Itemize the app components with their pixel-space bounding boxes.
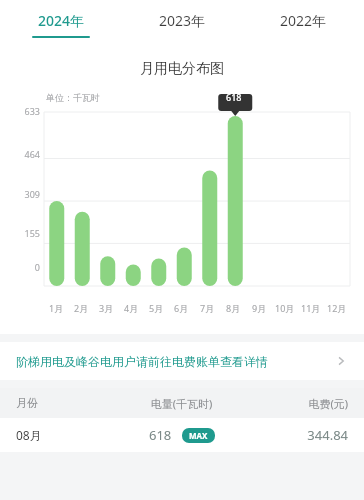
- staticText: 633: [0, 105, 40, 117]
- staticText: 4月: [124, 302, 139, 314]
- staticText: 11月: [301, 302, 321, 314]
- staticText: 单位：千瓦时: [46, 92, 100, 103]
- staticText: 电量(千瓦时): [119, 396, 244, 411]
- staticText: 2023年: [159, 11, 206, 30]
- staticText: 5月: [149, 302, 164, 314]
- button[interactable]: 阶梯用电及峰谷电用户请前往电费账单查看详情: [0, 342, 364, 380]
- staticText: 618: [226, 91, 242, 103]
- staticText: 2月: [74, 302, 89, 314]
- staticText: 10月: [275, 302, 295, 314]
- staticText: 309: [0, 188, 40, 200]
- staticText: 12月: [327, 302, 347, 314]
- other: 查看详情: [334, 354, 348, 368]
- staticText: 464: [0, 148, 40, 160]
- staticText: 6月: [174, 302, 189, 314]
- staticText: 9月: [252, 302, 267, 314]
- staticText: 8月: [226, 302, 241, 314]
- staticText: 7月: [200, 302, 215, 314]
- staticText: 阶梯用电及峰谷电用户请前往电费账单查看详情: [16, 354, 334, 369]
- button[interactable]: 08月: [0, 418, 364, 452]
- staticText: 155: [0, 227, 40, 239]
- staticText: 344.84: [244, 426, 348, 444]
- button[interactable]: 2023年: [122, 0, 243, 48]
- staticText: 2022年: [280, 11, 327, 30]
- staticText: 电费(元): [244, 396, 348, 411]
- staticText: 618: [149, 426, 172, 444]
- staticText: 3月: [99, 302, 114, 314]
- staticText: MAX: [189, 430, 208, 441]
- button[interactable]: 2024年: [0, 0, 122, 48]
- staticText: 0: [0, 261, 40, 273]
- button[interactable]: 2022年: [243, 0, 364, 48]
- staticText: 08月: [16, 427, 119, 443]
- staticText: 月用电分布图: [0, 60, 364, 78]
- staticText: 月份: [16, 396, 119, 410]
- staticText: 1月: [49, 302, 64, 314]
- staticText: 2024年: [38, 11, 85, 30]
